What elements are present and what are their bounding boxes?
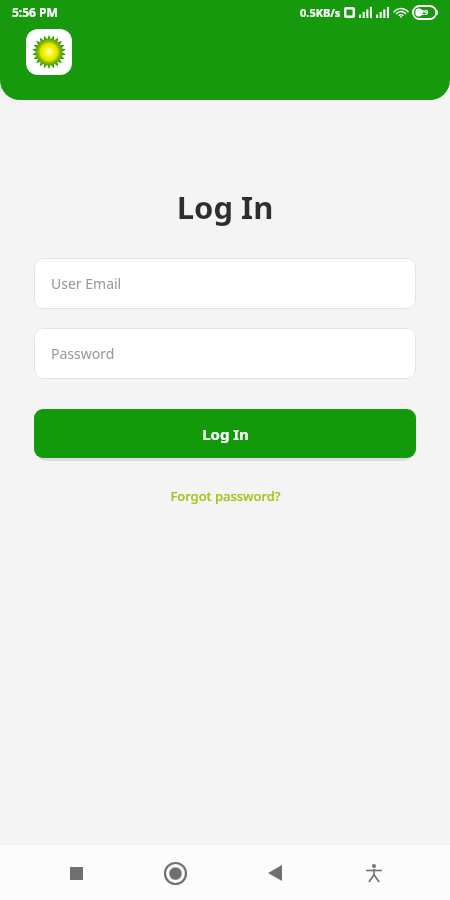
staticText: Password xyxy=(51,344,115,363)
staticText: 29 xyxy=(420,8,429,18)
button[interactable]: App logo xyxy=(26,29,72,75)
staticText: Log In xyxy=(202,424,249,444)
button[interactable]: Recent apps xyxy=(53,850,99,896)
button[interactable]: Forgot password? xyxy=(162,484,289,508)
button[interactable]: Password xyxy=(34,328,416,379)
button[interactable]: Home xyxy=(152,850,198,896)
button[interactable]: Accessibility xyxy=(351,850,397,896)
staticText: 0.5KB/s xyxy=(300,5,341,20)
staticText: Forgot password? xyxy=(170,487,281,505)
button[interactable]: User Email xyxy=(34,258,416,309)
staticText: Log In xyxy=(0,186,450,228)
staticText: User Email xyxy=(51,274,122,293)
button[interactable]: Back xyxy=(252,850,298,896)
button[interactable]: Log In xyxy=(34,409,416,458)
staticText: 5:56 PM xyxy=(12,4,58,20)
